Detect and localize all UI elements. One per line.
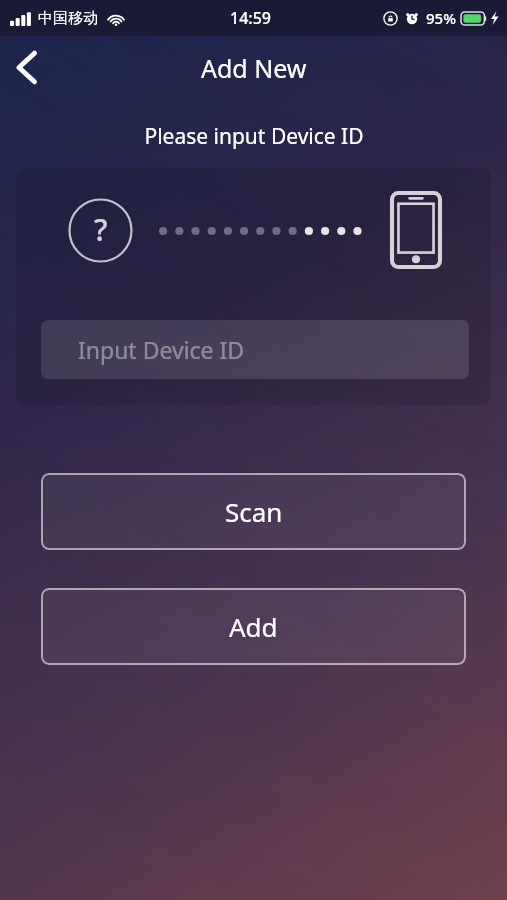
staticText: ?: [94, 209, 108, 250]
staticText: 95%: [426, 8, 456, 28]
staticText: Scan: [225, 494, 283, 529]
staticText: 14:59: [230, 7, 271, 29]
staticText: Please input Device ID: [144, 122, 364, 151]
staticText: Add New: [201, 51, 307, 85]
button[interactable]: Add: [41, 588, 466, 665]
staticText: Input Device ID: [78, 334, 245, 365]
button[interactable]: Back: [0, 41, 52, 93]
button[interactable]: Scan: [41, 473, 466, 550]
button[interactable]: Help: [68, 198, 133, 263]
button[interactable]: Input Device ID: [41, 320, 469, 379]
staticText: 中国移动: [38, 9, 98, 28]
staticText: Add: [229, 609, 278, 644]
